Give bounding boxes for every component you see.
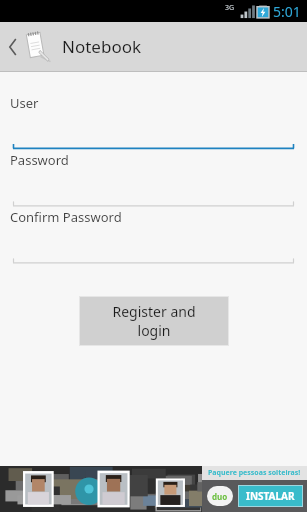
- staticText: Confirm Password: [10, 208, 122, 226]
- staticText: Register and login: [99, 302, 209, 340]
- button[interactable]: [0, 169, 307, 207]
- button[interactable]: [0, 226, 307, 264]
- staticText: Paquere pessoas solteiras!: [208, 468, 301, 478]
- button[interactable]: Register and login: [80, 297, 228, 345]
- button[interactable]: Advertisement: Paquere pessoas solteiras…: [0, 466, 307, 512]
- staticText: 5:01: [273, 2, 301, 21]
- staticText: Password: [10, 151, 69, 169]
- staticText: duo: [212, 491, 228, 502]
- staticText: Notebook: [62, 35, 142, 58]
- staticText: User: [10, 94, 39, 112]
- button[interactable]: [0, 112, 307, 150]
- button[interactable]: INSTALAR: [239, 486, 302, 506]
- staticText: 3G: [225, 3, 235, 13]
- button[interactable]: Back to Notebook: [0, 22, 307, 71]
- staticText: INSTALAR: [246, 489, 295, 503]
